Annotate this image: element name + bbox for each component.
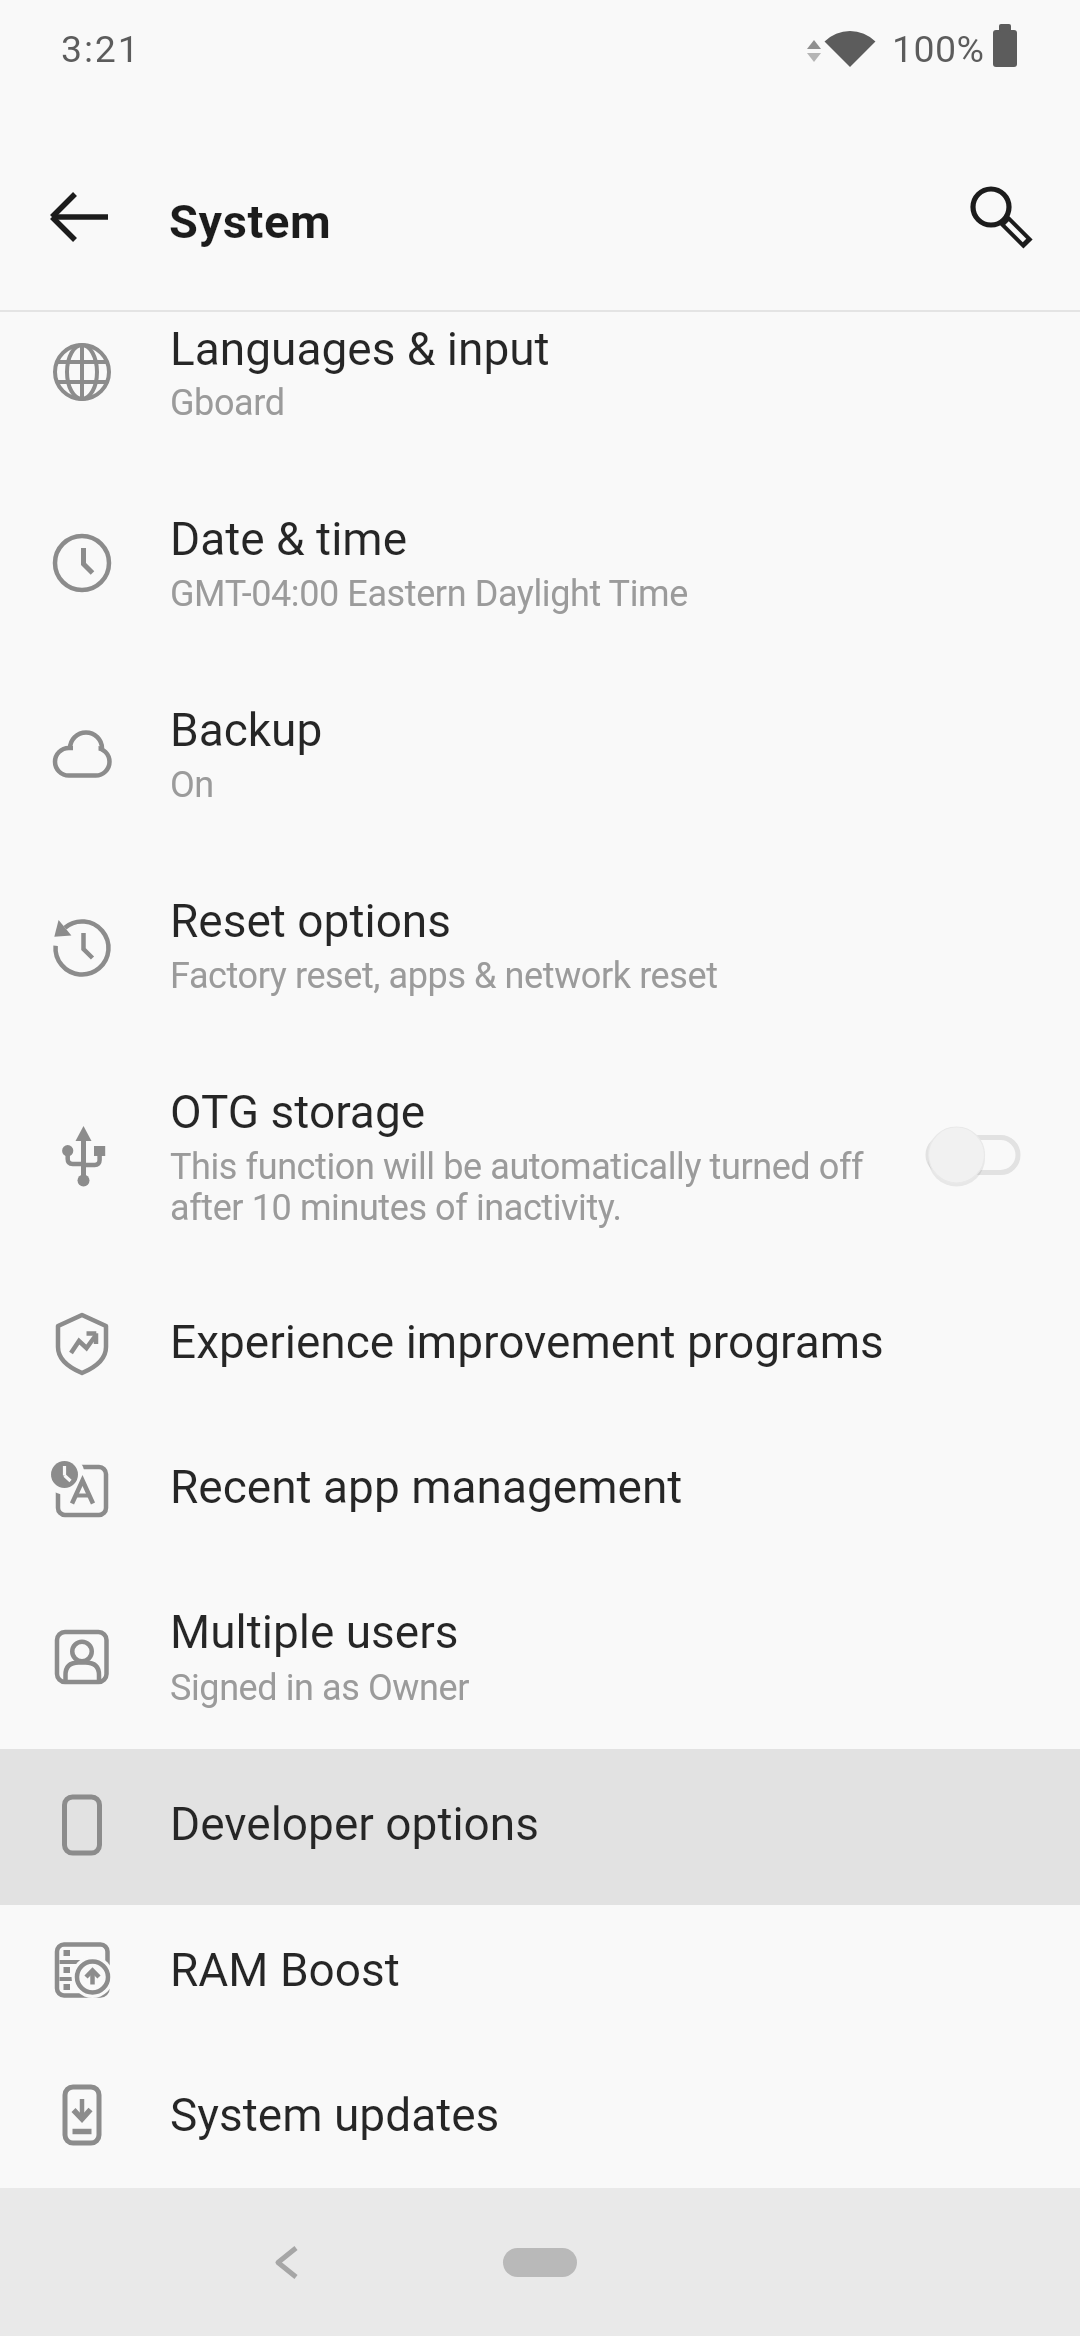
button[interactable]: Backup [0, 663, 1080, 854]
staticText: System [169, 194, 332, 249]
staticText: Gboard [170, 382, 285, 424]
button[interactable]: Languages & input [0, 312, 1080, 472]
button[interactable] [936, 152, 1048, 264]
staticText: Languages & input [170, 322, 550, 376]
button[interactable] [503, 2248, 577, 2277]
staticText: Multiple users [170, 1605, 459, 1659]
staticText: On [170, 764, 214, 806]
staticText: Recent app management [170, 1460, 683, 1514]
button[interactable]: RAM Boost [0, 1905, 1080, 2051]
button[interactable] [24, 161, 136, 273]
button[interactable] [252, 2227, 322, 2297]
staticText: Developer options [170, 1797, 539, 1851]
staticText: RAM Boost [170, 1943, 400, 1997]
button[interactable]: OTG storage [0, 1045, 1080, 1272]
staticText: 3:21 [61, 27, 141, 71]
button[interactable]: Reset options [0, 854, 1080, 1045]
button[interactable]: Recent app management [0, 1418, 1080, 1563]
staticText: System updates [170, 2088, 500, 2142]
staticText: Backup [170, 703, 323, 757]
staticText: Factory reset, apps & network reset [170, 955, 718, 997]
button[interactable]: Experience improvement programs [0, 1272, 1080, 1418]
staticText: Date & time [170, 512, 408, 566]
staticText: Signed in as Owner [170, 1667, 469, 1709]
button[interactable]: Date & time [0, 472, 1080, 663]
button[interactable]: Developer options [0, 1749, 1080, 1905]
staticText: GMT-04:00 Eastern Daylight Time [170, 573, 688, 615]
staticText: OTG storage [170, 1085, 426, 1139]
staticText: 100% [892, 27, 985, 71]
button[interactable]: System updates [0, 2051, 1080, 2188]
staticText: This function will be automatically turn… [170, 1146, 864, 1228]
staticText: Experience improvement programs [170, 1315, 884, 1369]
staticText: Reset options [170, 894, 452, 948]
button[interactable]: Multiple users [0, 1563, 1080, 1749]
